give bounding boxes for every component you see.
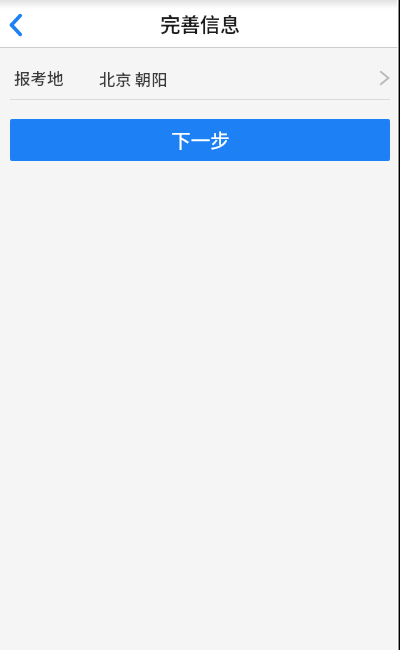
- staticText: 完善信息: [160, 9, 240, 38]
- button[interactable]: Back: [0, 0, 40, 48]
- staticText: 北京 朝阳: [99, 67, 168, 90]
- button[interactable]: 下一步: [10, 119, 390, 161]
- button[interactable]: 报考地: [0, 48, 400, 100]
- staticText: 下一步: [171, 125, 230, 153]
- staticText: 报考地: [14, 66, 64, 90]
